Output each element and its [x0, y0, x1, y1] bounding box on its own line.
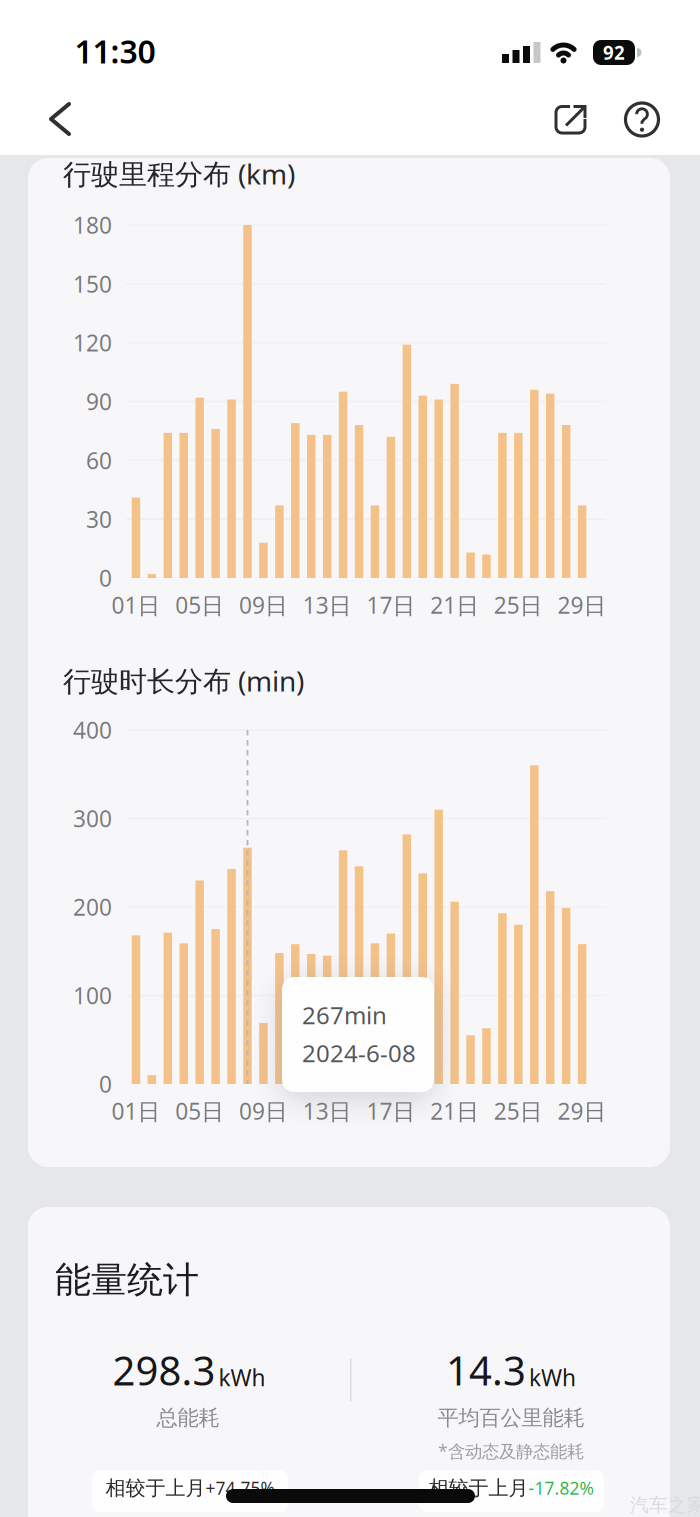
staticText: 13日: [303, 1096, 352, 1126]
staticText: 11:30: [74, 30, 155, 72]
staticText: 21日: [430, 1096, 479, 1126]
staticText: 09日: [239, 1096, 288, 1126]
staticText: 267min: [302, 999, 387, 1031]
staticText: 298.3: [112, 1343, 215, 1396]
staticText: 05日: [175, 590, 224, 620]
staticText: 300: [73, 803, 112, 833]
staticText: 行驶时长分布 (min): [63, 662, 304, 699]
staticText: 汽车之家: [630, 1493, 700, 1516]
staticText: 17日: [366, 1096, 415, 1126]
staticText: 13日: [303, 590, 352, 620]
staticText: kWh: [529, 1362, 576, 1393]
staticText: 能量统计: [55, 1258, 199, 1302]
staticText: 相较于上月: [105, 1476, 205, 1500]
staticText: 92: [603, 40, 625, 65]
staticText: 0: [99, 563, 112, 593]
staticText: 25日: [494, 1096, 543, 1126]
staticText: 总能耗: [156, 1405, 219, 1431]
staticText: 400: [73, 715, 112, 745]
staticText: 29日: [558, 1096, 607, 1126]
staticText: 平均百公里能耗: [437, 1405, 584, 1431]
staticText: 17日: [366, 590, 415, 620]
staticText: 09日: [239, 590, 288, 620]
staticText: 01日: [111, 590, 160, 620]
staticText: 60: [86, 445, 112, 475]
staticText: 30: [86, 504, 112, 534]
staticText: 0: [99, 1069, 112, 1099]
staticText: 05日: [175, 1096, 224, 1126]
staticText: 120: [73, 328, 112, 358]
button[interactable]: Share: [546, 95, 598, 143]
staticText: kWh: [218, 1362, 265, 1393]
staticText: 25日: [494, 590, 543, 620]
staticText: 150: [73, 269, 112, 299]
button[interactable]: Back: [40, 95, 84, 143]
staticText: 29日: [558, 590, 607, 620]
staticText: 相较于上月: [428, 1476, 528, 1500]
staticText: 180: [73, 210, 112, 240]
staticText: 200: [73, 892, 112, 922]
staticText: +74.75%: [205, 1476, 274, 1499]
staticText: 行驶里程分布 (km): [63, 155, 295, 192]
staticText: 90: [86, 386, 112, 416]
staticText: *含动态及静态能耗: [438, 1439, 584, 1462]
button[interactable]: Help: [620, 95, 665, 143]
staticText: 14.3: [446, 1343, 526, 1396]
staticText: 21日: [430, 590, 479, 620]
staticText: -17.82%: [528, 1476, 593, 1499]
staticText: 100: [73, 980, 112, 1010]
staticText: 2024-6-08: [302, 1037, 416, 1069]
staticText: 01日: [111, 1096, 160, 1126]
